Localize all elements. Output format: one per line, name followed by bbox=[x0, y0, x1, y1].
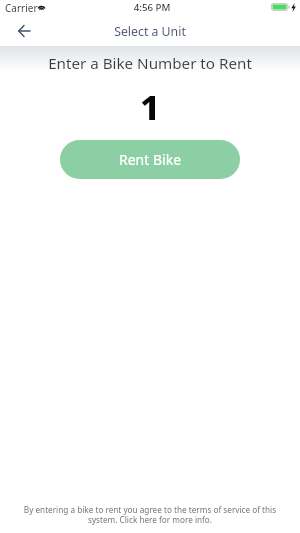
button[interactable]: Rent Bike bbox=[60, 140, 240, 179]
staticText: 4:56 PM bbox=[2, 1, 300, 14]
staticText: Select a Unit bbox=[0, 23, 300, 40]
staticText: 1 bbox=[0, 83, 300, 130]
staticText: Enter a Bike Number to Rent bbox=[0, 53, 300, 74]
staticText: Rent Bike bbox=[119, 150, 182, 169]
button[interactable]: Back bbox=[12, 19, 35, 42]
button[interactable]: By entering a bike to rent you agree to … bbox=[18, 504, 282, 525]
staticText: Carrier bbox=[5, 1, 38, 15]
staticText: By entering a bike to rent you agree to … bbox=[18, 504, 282, 525]
